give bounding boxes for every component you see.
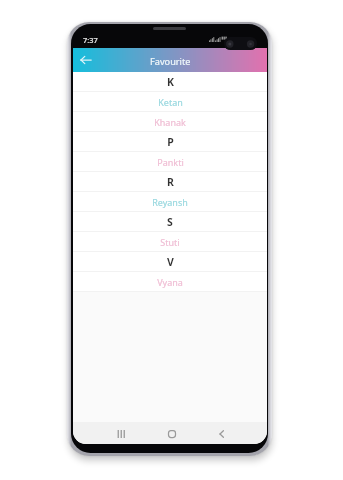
button[interactable]: R xyxy=(73,172,267,192)
staticText: R xyxy=(167,175,174,189)
staticText: Reyansh xyxy=(152,196,188,208)
staticText: Stuti xyxy=(160,236,180,248)
button[interactable]: Ketan xyxy=(73,92,267,112)
button[interactable]: Stuti xyxy=(73,232,267,252)
button[interactable]: Back xyxy=(73,48,99,72)
staticText: S xyxy=(167,215,173,229)
button[interactable]: Reyansh xyxy=(73,192,267,212)
button[interactable]: Khanak xyxy=(73,112,267,132)
button[interactable]: V xyxy=(73,252,267,272)
button[interactable]: Back xyxy=(211,423,232,444)
staticText: V xyxy=(167,255,174,269)
button[interactable]: Home xyxy=(161,423,182,444)
staticText: K xyxy=(167,75,174,89)
button[interactable]: P xyxy=(73,132,267,152)
button[interactable]: S xyxy=(73,212,267,232)
button[interactable]: Recent apps xyxy=(110,423,131,444)
staticText: Vyana xyxy=(157,276,183,288)
button[interactable]: Vyana xyxy=(73,272,267,292)
staticText: Pankti xyxy=(157,156,184,168)
staticText: Ketan xyxy=(158,96,183,108)
button[interactable]: K xyxy=(73,72,267,92)
staticText: P xyxy=(167,135,174,149)
staticText: 7:37 xyxy=(83,35,98,45)
staticText: Favourite xyxy=(150,55,191,68)
button[interactable]: Pankti xyxy=(73,152,267,172)
staticText: Khanak xyxy=(154,116,186,128)
